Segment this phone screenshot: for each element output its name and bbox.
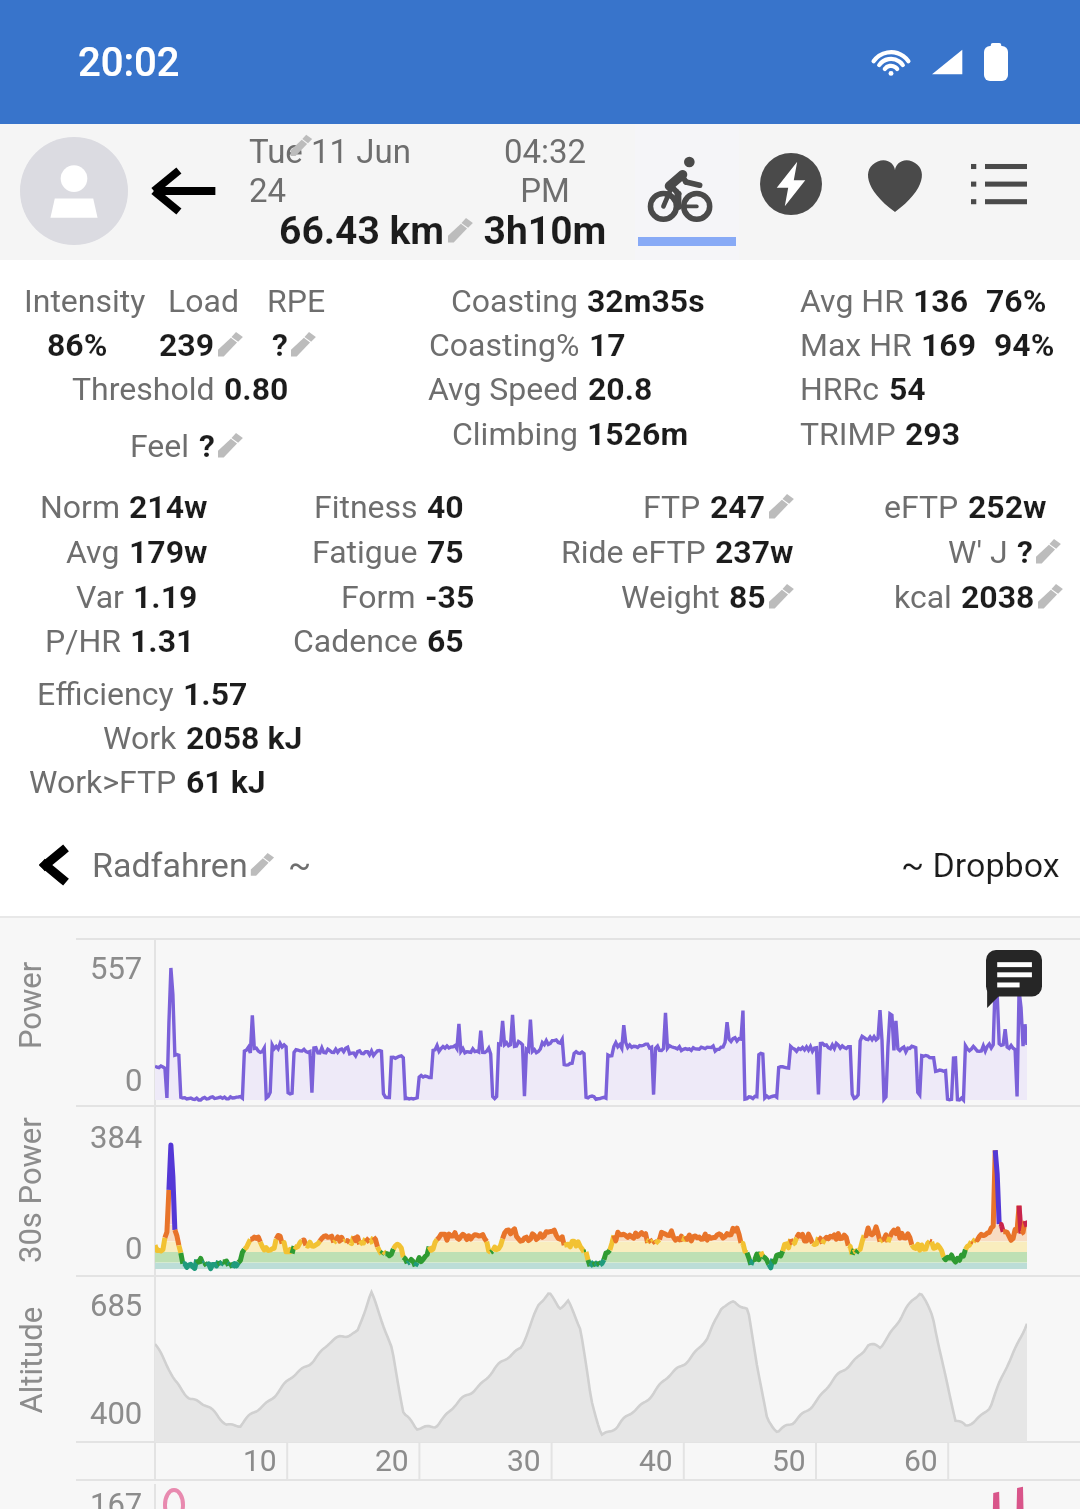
staticText: Avg HR xyxy=(800,282,904,320)
staticText: 20.8 xyxy=(588,370,653,408)
button[interactable]: Heart rate xyxy=(843,124,947,260)
staticText: eFTP xyxy=(884,488,959,526)
staticText: RPE xyxy=(267,282,326,320)
staticText: Fatigue xyxy=(312,533,418,571)
staticText: 557 xyxy=(90,950,143,986)
staticText: Coasting xyxy=(451,282,578,320)
staticText: 169 xyxy=(921,326,977,364)
staticText: ~ Dropbox xyxy=(901,845,1060,885)
staticText: Altitude xyxy=(12,1306,48,1413)
staticText: ? xyxy=(272,326,288,364)
staticText: 237w xyxy=(715,533,794,571)
staticText: 60 xyxy=(904,1443,938,1478)
staticText: Avg Speed xyxy=(428,370,579,408)
staticText: TRIMP xyxy=(800,415,896,453)
staticText: 293 xyxy=(905,415,961,453)
staticText: FTP xyxy=(643,488,701,526)
staticText: Var xyxy=(76,578,124,616)
staticText: 32m35s xyxy=(587,282,705,320)
staticText: 384 xyxy=(90,1119,143,1155)
staticText: 1.19 xyxy=(133,578,198,616)
staticText: 1.31 xyxy=(130,622,195,660)
staticText: ~ xyxy=(288,845,312,885)
staticText: Load xyxy=(168,282,239,320)
staticText: Cadence xyxy=(293,622,418,660)
staticText: P/HR xyxy=(45,622,121,660)
staticText: ? xyxy=(1017,533,1033,571)
staticText: Ride eFTP xyxy=(561,533,706,571)
staticText: 167 xyxy=(90,1486,143,1509)
staticText: 1526m xyxy=(587,415,689,453)
staticText: Fitness xyxy=(314,488,418,526)
staticText: 1.57 xyxy=(183,675,248,713)
staticText: 20:02 xyxy=(78,39,180,86)
staticText: 3h10m xyxy=(477,208,613,254)
staticText: Work>FTP xyxy=(29,763,177,801)
staticText: Efficiency xyxy=(37,675,174,713)
staticText: Threshold xyxy=(72,370,215,408)
button[interactable]: Radfahren xyxy=(34,844,312,886)
staticText: 252w xyxy=(968,488,1047,526)
staticText: 0 xyxy=(125,1062,143,1098)
button[interactable]: Comments xyxy=(986,950,1042,1008)
staticText: 76% xyxy=(986,282,1047,320)
staticText: 50 xyxy=(772,1443,806,1478)
staticText: Avg xyxy=(66,533,120,571)
staticText: 136 xyxy=(913,282,969,320)
staticText: 0 xyxy=(125,1230,143,1266)
staticText: 17 xyxy=(589,326,626,364)
staticText: -35 xyxy=(425,578,475,616)
button[interactable]: Ride xyxy=(635,124,739,260)
staticText: 65 xyxy=(427,622,464,660)
button[interactable]: Back xyxy=(148,155,220,227)
staticText: 40 xyxy=(639,1443,673,1478)
staticText: Weight xyxy=(621,578,720,616)
staticText: 85 xyxy=(729,578,766,616)
staticText: Coasting% xyxy=(429,326,580,364)
staticText: 239 xyxy=(159,326,215,364)
staticText: W' J xyxy=(948,533,1008,571)
staticText: 54 xyxy=(889,370,926,408)
staticText: Max HR xyxy=(800,326,912,364)
staticText: Tue 11 Jun 24 xyxy=(249,132,421,210)
staticText: Work xyxy=(103,719,177,757)
button[interactable]: Profile xyxy=(20,137,128,245)
staticText: 20 xyxy=(375,1443,409,1478)
staticText: kcal xyxy=(894,578,952,616)
staticText: 2038 xyxy=(961,578,1035,616)
staticText: 0.80 xyxy=(224,370,289,408)
staticText: 10 xyxy=(243,1443,277,1478)
staticText: 179w xyxy=(129,533,208,571)
staticText: 61 kJ xyxy=(186,763,266,801)
staticText: 400 xyxy=(90,1395,143,1431)
staticText: Radfahren xyxy=(92,845,248,885)
staticText: Power xyxy=(12,961,48,1049)
button[interactable]: ~ Dropbox xyxy=(901,845,1060,885)
staticText: Feel xyxy=(130,427,190,465)
staticText: 94% xyxy=(994,326,1055,364)
staticText: 30s Power xyxy=(12,1117,48,1263)
staticText: 214w xyxy=(129,488,208,526)
staticText: 30 xyxy=(507,1443,541,1478)
staticText: 66.43 km xyxy=(279,208,445,254)
staticText: 40 xyxy=(427,488,464,526)
staticText: 247 xyxy=(710,488,766,526)
staticText: Norm xyxy=(40,488,120,526)
staticText: 75 xyxy=(427,533,464,571)
button[interactable]: Menu xyxy=(947,124,1051,260)
staticText: 2058 kJ xyxy=(186,719,303,757)
staticText: ? xyxy=(199,427,215,465)
staticText: HRRc xyxy=(800,370,880,408)
staticText: Climbing xyxy=(452,415,578,453)
button[interactable]: Power xyxy=(739,124,843,260)
staticText: 685 xyxy=(90,1287,143,1323)
staticText: Form xyxy=(341,578,416,616)
staticText: 86% xyxy=(47,326,108,364)
staticText: 04:32 PM xyxy=(484,132,606,210)
staticText: Intensity xyxy=(24,282,146,320)
